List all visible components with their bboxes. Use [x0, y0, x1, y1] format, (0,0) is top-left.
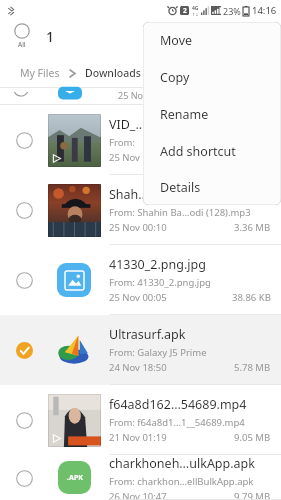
staticText: Downloads: [85, 66, 141, 80]
button[interactable]: Add shortcut: [143, 133, 281, 170]
button[interactable]: Select: [14, 130, 34, 150]
staticText: 25 Nov 00:10: [109, 221, 167, 234]
staticText: 25 Nov: [109, 151, 140, 164]
staticText: Details: [160, 179, 201, 196]
staticText: 26 Nov 10:47: [109, 490, 167, 500]
staticText: 4G: [192, 5, 199, 12]
staticText: Ultrasurf.apk: [109, 326, 186, 343]
staticText: My Files: [20, 66, 60, 80]
staticText: 21 Nov 01:19: [109, 431, 167, 444]
staticText: 2: [183, 6, 187, 15]
button[interactable]: Select: [0, 245, 281, 315]
button[interactable]: Select: [14, 200, 34, 220]
staticText: From: charkhon…ellBulkApp.apk: [109, 475, 254, 488]
staticText: Add shortcut: [160, 143, 236, 160]
staticText: From:: [109, 136, 135, 149]
staticText: From: Shahin Ba…odi (128).mp3: [109, 206, 251, 219]
button[interactable]: Select: [14, 468, 34, 488]
staticText: Move: [160, 32, 193, 49]
staticText: .APK: [67, 473, 83, 483]
button[interactable]: Select: [0, 105, 281, 175]
staticText: 9.05 MB: [234, 431, 271, 444]
button[interactable]: Select: [0, 175, 281, 245]
staticText: 41330_2.png.jpg: [109, 256, 206, 273]
button[interactable]: Details: [143, 170, 281, 205]
button[interactable]: Rename: [143, 96, 281, 133]
staticText: Shah…: [109, 186, 149, 203]
staticText: 24 Nov 18:50: [109, 361, 167, 374]
button[interactable]: My Files: [18, 62, 62, 84]
staticText: 25 Nov 00:05: [109, 291, 167, 304]
button[interactable]: Selected: [14, 340, 34, 360]
staticText: charkhoneh…ulkApp.apk: [109, 455, 255, 472]
button[interactable]: Select: [0, 455, 281, 500]
button[interactable]: Select: [14, 270, 34, 290]
staticText: 25 Nov: [118, 89, 148, 101]
staticText: 5.78 MB: [234, 361, 271, 374]
button[interactable]: Select: [0, 385, 281, 455]
staticText: From: f64a8d1…1__54689.mp4: [109, 416, 245, 429]
staticText: f64a8d162…54689.mp4: [109, 396, 247, 413]
button[interactable]: Select all: [12, 21, 32, 51]
staticText: VID_…: [109, 116, 146, 133]
staticText: All: [18, 40, 26, 49]
button[interactable]: Copy: [143, 59, 281, 96]
button[interactable]: Selected: [0, 315, 281, 385]
staticText: Rename: [160, 106, 209, 123]
staticText: ↑↓: [192, 12, 199, 17]
staticText: 9.79 MB: [234, 490, 271, 500]
staticText: 14:16: [252, 4, 277, 17]
staticText: From: 41330_2.png.jpg: [109, 276, 211, 289]
staticText: 38.86 KB: [232, 291, 271, 304]
button[interactable]: Downloads: [83, 62, 143, 84]
staticText: Copy: [160, 69, 190, 86]
staticText: 3.36 MB: [234, 221, 271, 234]
staticText: 23%: [223, 5, 241, 17]
staticText: From: Galaxy J5 Prime: [109, 346, 207, 359]
staticText: 1: [46, 27, 55, 46]
button[interactable]: Select: [14, 410, 34, 430]
button[interactable]: Move: [143, 22, 281, 59]
